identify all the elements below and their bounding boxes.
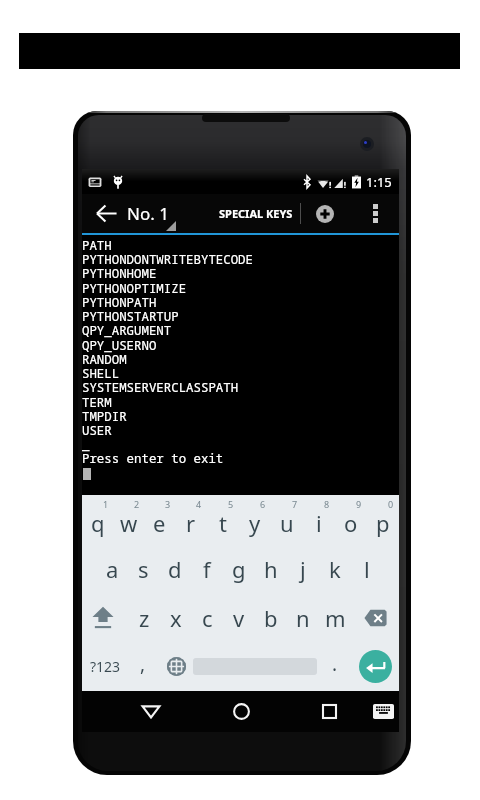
button[interactable]: 5 <box>207 495 239 544</box>
button[interactable]: c <box>191 593 223 642</box>
button[interactable]: . <box>321 642 348 691</box>
staticText: b <box>264 603 278 633</box>
button[interactable]: Recents <box>308 691 350 732</box>
staticText: . <box>332 651 338 677</box>
button[interactable]: m <box>319 593 351 642</box>
staticText: SPECIAL KEYS <box>219 206 293 221</box>
button[interactable]: 8 <box>303 495 335 544</box>
staticText: u <box>280 508 294 538</box>
button[interactable]: More options <box>359 194 391 233</box>
staticText: ?123 <box>90 657 121 676</box>
button[interactable]: 0 <box>367 495 399 544</box>
button[interactable]: g <box>223 544 255 593</box>
staticText: y <box>249 508 261 538</box>
staticText: k <box>329 554 341 584</box>
staticText: h <box>264 554 278 584</box>
staticText: 4 <box>196 498 202 510</box>
staticText: n <box>296 603 310 633</box>
staticText: No. 1 <box>127 202 169 225</box>
staticText: _ <box>82 436 90 453</box>
staticText: PYTHONPATH <box>82 294 157 311</box>
staticText: RANDOM <box>82 351 127 368</box>
button[interactable]: v <box>223 593 255 642</box>
staticText: j <box>300 554 306 584</box>
button[interactable]: s <box>128 544 159 593</box>
staticText: t <box>219 508 227 538</box>
button[interactable]: Enter <box>348 642 399 691</box>
staticText: TMPDIR <box>82 408 127 425</box>
staticText: Press enter to exit <box>82 450 224 467</box>
staticText: 2 <box>134 498 140 510</box>
button[interactable]: j <box>287 544 319 593</box>
button[interactable]: n <box>287 593 319 642</box>
button[interactable]: b <box>255 593 287 642</box>
button[interactable]: 3 <box>144 495 175 544</box>
button[interactable]: Language <box>156 642 188 691</box>
staticText: d <box>168 554 182 584</box>
staticText: , <box>140 651 146 677</box>
button[interactable]: Keyboard <box>362 691 404 732</box>
staticText: TERM <box>82 394 112 411</box>
button[interactable]: ?123 <box>82 642 129 691</box>
button[interactable]: Back <box>86 194 126 233</box>
staticText: PYTHONOPTIMIZE <box>82 280 187 297</box>
staticText: QPY_USERNO <box>82 337 157 354</box>
staticText: q <box>91 508 105 538</box>
staticText: a <box>106 554 119 584</box>
button[interactable]: d <box>159 544 191 593</box>
button[interactable]: 2 <box>113 495 144 544</box>
button[interactable]: Delete <box>351 593 399 642</box>
staticText: 1:15 <box>366 173 392 191</box>
staticText: 5 <box>228 498 234 510</box>
button[interactable]: Shift <box>82 593 129 642</box>
button[interactable]: f <box>191 544 223 593</box>
staticText: 3 <box>165 498 171 510</box>
staticText: PATH <box>82 237 112 254</box>
staticText: 9 <box>356 498 362 510</box>
staticText: m <box>325 603 346 633</box>
staticText: SHELL <box>82 365 120 382</box>
staticText: g <box>232 554 246 584</box>
button[interactable]: 6 <box>239 495 271 544</box>
button[interactable]: a <box>97 544 128 593</box>
staticText: PYTHONSTARTUP <box>82 308 179 325</box>
button[interactable]: 4 <box>175 495 207 544</box>
staticText: USER <box>82 422 112 439</box>
button[interactable]: , <box>129 642 156 691</box>
staticText: x <box>170 603 182 633</box>
staticText: l <box>364 554 370 584</box>
staticText: w <box>120 508 138 538</box>
button[interactable]: 7 <box>271 495 303 544</box>
button[interactable]: Add <box>307 194 343 233</box>
staticText: f <box>203 554 211 584</box>
button[interactable]: z <box>129 593 160 642</box>
button[interactable]: Home <box>220 691 262 732</box>
button[interactable]: SPECIAL KEYS <box>216 194 296 233</box>
staticText: s <box>138 554 149 584</box>
button[interactable]: Back <box>130 691 172 732</box>
staticText: c <box>202 603 213 633</box>
staticText: i <box>316 508 322 538</box>
button[interactable]: l <box>351 544 383 593</box>
button[interactable]: k <box>319 544 351 593</box>
button[interactable]: Space <box>188 642 321 691</box>
staticText: 6 <box>260 498 266 510</box>
staticText: 0 <box>388 498 394 510</box>
staticText: o <box>344 508 358 538</box>
button[interactable]: h <box>255 544 287 593</box>
staticText: PYTHONHOME <box>82 265 157 282</box>
staticText: 7 <box>292 498 298 510</box>
staticText: r <box>186 508 196 538</box>
staticText: PYTHONDONTWRITEBYTECODE <box>82 251 253 268</box>
staticText: v <box>233 603 245 633</box>
button[interactable]: x <box>160 593 191 642</box>
button[interactable]: 1 <box>82 495 113 544</box>
staticText: e <box>153 508 166 538</box>
staticText: QPY_ARGUMENT <box>82 322 172 339</box>
staticText: SYSTEMSERVERCLASSPATH <box>82 379 239 396</box>
staticText: z <box>139 603 150 633</box>
button[interactable]: 9 <box>335 495 367 544</box>
staticText: 1 <box>103 498 109 510</box>
staticText: 8 <box>324 498 330 510</box>
staticText: p <box>376 508 390 538</box>
